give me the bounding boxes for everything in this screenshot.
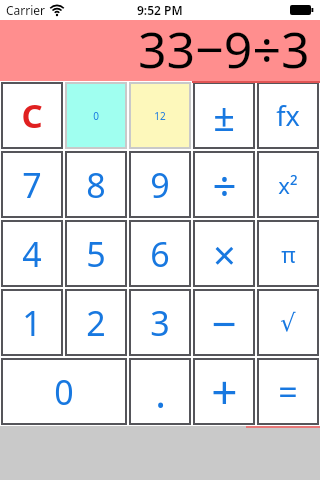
staticText: 0 <box>54 369 74 415</box>
button[interactable]: 6 <box>129 220 191 287</box>
button[interactable]: x² <box>257 151 319 218</box>
staticText: 9:52 PM <box>137 2 183 18</box>
button[interactable]: 2 <box>65 289 127 356</box>
button[interactable]: . <box>129 358 191 425</box>
button[interactable]: 3 <box>129 289 191 356</box>
staticText: 3 <box>150 300 170 346</box>
staticText: − <box>211 293 237 353</box>
button[interactable]: × <box>193 220 255 287</box>
button[interactable]: 5 <box>65 220 127 287</box>
staticText: 33−9÷3 <box>138 15 310 76</box>
staticText: × <box>213 227 236 281</box>
staticText: π <box>281 239 296 269</box>
staticText: fx <box>276 97 300 134</box>
staticText: x² <box>278 170 298 200</box>
staticText: 6 <box>150 231 170 277</box>
button[interactable]: 8 <box>65 151 127 218</box>
staticText: 2 <box>86 300 106 346</box>
staticText: √ <box>280 309 296 337</box>
button[interactable]: C <box>1 82 63 149</box>
staticText: ÷ <box>212 156 237 213</box>
button[interactable]: − <box>193 289 255 356</box>
staticText: 1 <box>22 300 42 346</box>
button[interactable]: + <box>193 358 255 425</box>
staticText: 7 <box>22 162 42 208</box>
staticText: ± <box>213 90 235 142</box>
staticText: + <box>211 360 238 423</box>
button[interactable]: ± <box>193 82 255 149</box>
button[interactable]: 9 <box>129 151 191 218</box>
staticText: 8 <box>86 162 106 208</box>
button[interactable]: π <box>257 220 319 287</box>
button[interactable]: 0 <box>65 82 127 149</box>
staticText: 0 <box>93 109 99 123</box>
button[interactable]: √ <box>257 289 319 356</box>
staticText: . <box>155 365 166 419</box>
button[interactable]: = <box>257 358 319 425</box>
button[interactable]: 12 <box>129 82 191 149</box>
button[interactable]: ÷ <box>193 151 255 218</box>
staticText: = <box>278 369 298 415</box>
button[interactable]: 1 <box>1 289 63 356</box>
staticText: C <box>21 93 43 138</box>
button[interactable]: 7 <box>1 151 63 218</box>
staticText: Carrier <box>6 2 46 18</box>
staticText: 4 <box>22 231 42 277</box>
staticText: 9 <box>150 162 170 208</box>
button[interactable]: fx <box>257 82 319 149</box>
staticText: 12 <box>154 109 166 123</box>
button[interactable]: 4 <box>1 220 63 287</box>
button[interactable]: 0 <box>1 358 127 425</box>
staticText: 5 <box>86 231 106 277</box>
